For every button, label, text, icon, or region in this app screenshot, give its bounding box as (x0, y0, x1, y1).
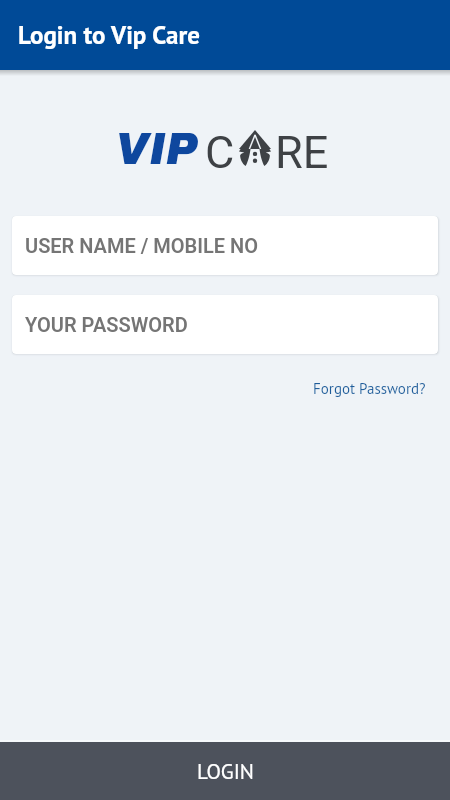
button[interactable]: YOUR PASSWORD (12, 295, 438, 354)
staticText: YOUR PASSWORD (25, 313, 188, 336)
staticText: USER NAME / MOBILE NO (25, 234, 259, 257)
button[interactable]: Forgot Password? (313, 377, 450, 400)
staticText: Login to Vip Care (18, 19, 200, 51)
staticText: C (205, 126, 235, 178)
staticText: VIP (115, 125, 198, 173)
staticText: RE (275, 126, 329, 178)
button[interactable]: LOGIN (0, 742, 450, 800)
button[interactable]: USER NAME / MOBILE NO (12, 216, 438, 275)
button[interactable]: Login to Vip Care (0, 0, 450, 70)
staticText: LOGIN (197, 758, 254, 785)
